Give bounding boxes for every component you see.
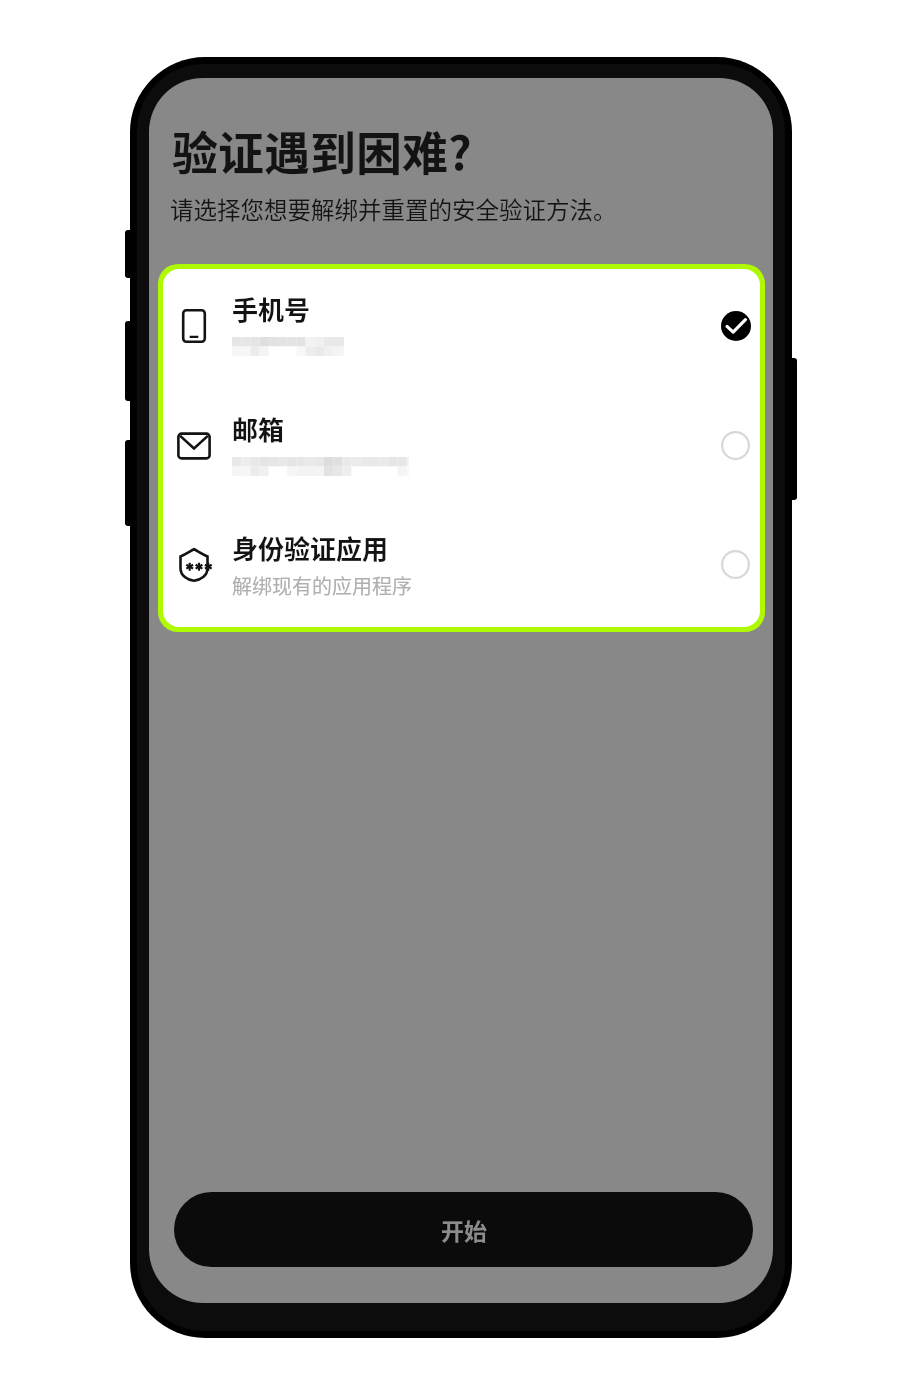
- staticText: 验证遇到困难?: [172, 117, 472, 184]
- button[interactable]: Email: [163, 389, 760, 509]
- other: Authenticator app: [174, 545, 214, 585]
- other: Email: [174, 426, 214, 466]
- button[interactable]: 手机号 selected: [712, 302, 759, 349]
- staticText: 手机号: [232, 290, 311, 328]
- button[interactable]: Authenticator app: [163, 508, 760, 627]
- button[interactable]: Phone number: [163, 269, 760, 389]
- staticText: 请选择您想要解绑并重置的安全验证方法。: [170, 192, 617, 226]
- staticText: 身份验证应用: [232, 529, 389, 567]
- staticText: 开始: [441, 1213, 487, 1246]
- button[interactable]: Select 身份验证应用: [712, 541, 759, 588]
- staticText: 解绑现有的应用程序: [232, 571, 412, 600]
- other: Phone number: [174, 306, 214, 346]
- staticText: 邮箱: [232, 410, 285, 448]
- button[interactable]: Select 邮箱: [712, 422, 759, 469]
- button[interactable]: 开始: [174, 1192, 753, 1267]
